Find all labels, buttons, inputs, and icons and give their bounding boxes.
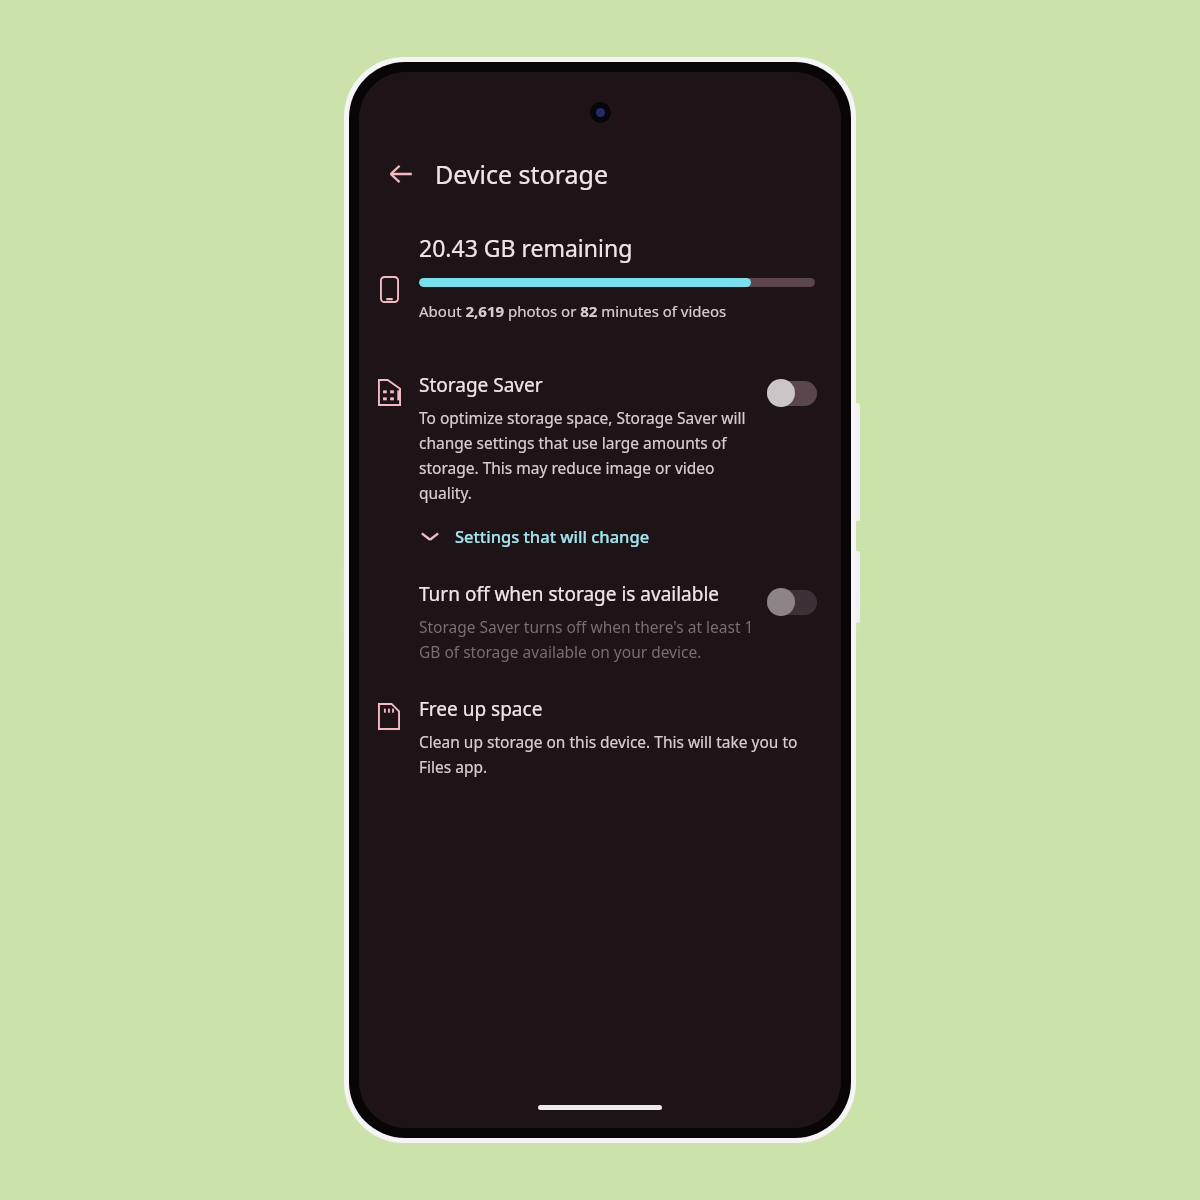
staticText: Settings that will change (455, 525, 650, 547)
staticText: To optimize storage space, Storage Saver… (419, 407, 757, 503)
button[interactable]: Settings that will change (419, 521, 650, 551)
button[interactable]: Toggle (767, 378, 817, 408)
staticText: Device storage (435, 157, 609, 191)
staticText: 20.43 GB remaining (419, 232, 633, 263)
staticText: About 2,619 photos or 82 minutes of vide… (419, 301, 727, 321)
button[interactable]: Turn off when storage is available (359, 581, 841, 662)
button[interactable]: Storage Saver (359, 372, 841, 503)
button[interactable]: Toggle (767, 587, 817, 617)
button[interactable]: Free up space (359, 696, 841, 777)
staticText: Free up space (419, 696, 543, 722)
staticText: Turn off when storage is available (419, 581, 720, 607)
staticText: Clean up storage on this device. This wi… (419, 731, 817, 777)
staticText: Storage Saver (419, 372, 543, 398)
button[interactable]: Back (379, 152, 423, 196)
staticText: Storage Saver turns off when there's at … (419, 616, 757, 662)
